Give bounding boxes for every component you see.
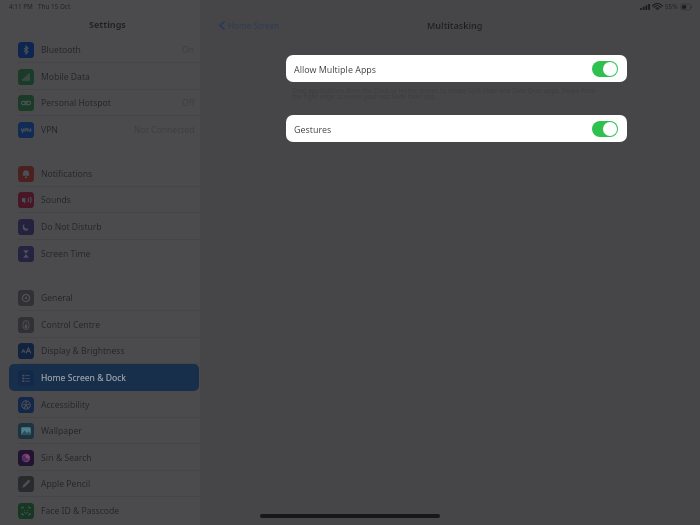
staticText: Allow Multiple Apps — [294, 63, 377, 75]
staticText: Gestures — [294, 123, 332, 135]
button[interactable]: Toggle Gestures — [592, 121, 618, 137]
staticText: VPN — [41, 124, 58, 136]
button[interactable]: Control Centre — [0, 311, 200, 338]
button[interactable]: Personal Hotspot — [0, 89, 200, 116]
staticText: Settings — [89, 18, 126, 30]
button[interactable]: Back to Home Screen — [217, 18, 282, 33]
button[interactable]: Home Screen & Dock — [0, 364, 200, 391]
staticText: Do Not Disturb — [41, 221, 102, 233]
staticText: Display & Brightness — [41, 345, 125, 357]
staticText: Personal Hotspot — [41, 97, 111, 109]
button[interactable]: Notifications — [0, 160, 200, 187]
staticText: Accessibility — [41, 399, 90, 411]
staticText: Notifications — [41, 168, 93, 180]
button[interactable]: General — [0, 284, 200, 311]
button[interactable]: Accessibility — [0, 391, 200, 418]
staticText: Off — [182, 97, 195, 109]
button[interactable]: Sounds — [0, 186, 200, 213]
staticText: 55% — [665, 2, 678, 11]
staticText: Face ID & Passcode — [41, 505, 120, 517]
staticText: Home Screen & Dock — [41, 372, 126, 384]
staticText: Not Connected — [134, 124, 195, 136]
button[interactable]: Wallpaper — [0, 417, 200, 444]
staticText: Mobile Data — [41, 71, 90, 83]
staticText: Siri & Search — [41, 452, 92, 464]
button[interactable]: Mobile Data — [0, 63, 200, 90]
staticText: Home Screen — [228, 20, 280, 31]
button[interactable]: Bluetooth — [0, 36, 200, 63]
button[interactable]: Do Not Disturb — [0, 213, 200, 240]
staticText: Screen Time — [41, 248, 91, 260]
button[interactable]: VPN — [0, 116, 200, 143]
staticText: Wallpaper — [41, 425, 82, 437]
button[interactable]: Apple Pencil — [0, 470, 200, 497]
button[interactable]: Allow Multiple Apps — [286, 55, 627, 82]
staticText: General — [41, 292, 73, 304]
button[interactable]: Face ID & Passcode — [0, 497, 200, 524]
staticText: Apple Pencil — [41, 478, 91, 490]
staticText: Sounds — [41, 194, 71, 206]
staticText: Multitasking — [427, 19, 483, 31]
staticText: Thu 15 Oct — [38, 2, 71, 10]
staticText: Control Centre — [41, 319, 100, 331]
button[interactable]: Screen Time — [0, 240, 200, 267]
staticText: On — [182, 44, 195, 56]
staticText: 4:11 PM — [9, 2, 33, 10]
button[interactable]: Display & Brightness — [0, 337, 200, 364]
button[interactable]: Siri & Search — [0, 444, 200, 471]
button[interactable]: Gestures — [286, 115, 627, 142]
staticText: Bluetooth — [41, 44, 81, 56]
button[interactable]: Toggle Allow Multiple Apps — [592, 61, 618, 77]
